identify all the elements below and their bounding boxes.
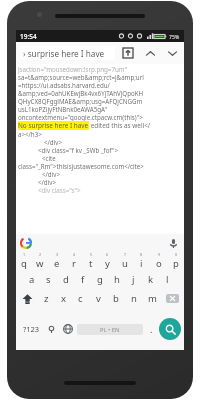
staticText: o [156,257,162,270]
button[interactable]: x [55,288,72,308]
staticText: <div class="s"> [38,186,81,194]
button[interactable]: l [159,270,176,288]
button[interactable]: h [108,270,125,288]
staticText: . [150,323,153,335]
staticText: jsaction="mousedown:lsrp.png=7um" [18,65,128,73]
button[interactable]: › surprise here I have [20,46,115,60]
staticText: 3 [56,252,59,257]
staticText: ?123 [23,324,40,334]
button[interactable]: Emoji [43,308,59,350]
button[interactable]: k [142,270,159,288]
button[interactable]: Previous [142,45,158,61]
staticText: n [131,292,137,305]
staticText: h [114,273,120,286]
staticText: usL1koPZijyFtNBnk0eAWA5gA" [18,105,108,113]
button[interactable]: 7 [116,252,133,270]
button[interactable]: Next [164,45,180,61]
staticText: </div> [38,178,56,186]
staticText: &amp;ved=0ahUKEwjBk4vx6YjTAhVjQpoKH [18,89,144,97]
button[interactable]: Backspace [161,288,184,308]
staticText: f [81,273,85,286]
staticText: </div> [42,170,60,178]
button[interactable]: g [91,270,108,288]
staticText: 9 [158,252,161,257]
staticText: g [97,273,103,286]
button[interactable]: s [40,270,57,288]
button[interactable]: 3 [48,252,65,270]
button[interactable]: 2 [32,252,48,270]
staticText: oncontextmenu="google.ctpacw.cm(this)"> [18,113,143,121]
staticText: a></h3> [18,130,42,138]
staticText: 75% [169,33,180,40]
staticText: r [72,257,76,270]
staticText: 0 [175,252,178,257]
staticText: QHyCX8QFgglMAE&amp;usg=AFQjCNGGm [18,97,143,105]
staticText: </div> [44,138,62,146]
staticText: 19:54 [20,32,37,41]
staticText: <div class="f kv _SWb _fof"> [38,146,119,154]
button[interactable]: 4 [65,252,82,270]
staticText: d [63,273,69,286]
staticText: i [140,257,143,270]
staticText: b [113,292,119,305]
staticText: e [54,257,60,270]
button[interactable]: j [125,270,142,288]
staticText: 6 [106,252,109,257]
staticText: 4 [73,252,76,257]
staticText: 1 [23,252,26,257]
staticText: 2 [39,252,42,257]
button[interactable]: Change language [59,308,77,350]
button[interactable]: 1 [16,252,32,270]
staticText: t [89,257,93,270]
button[interactable]: f [74,270,91,288]
staticText: j [132,273,135,286]
staticText: w [36,257,44,270]
button[interactable]: n [125,288,143,308]
button[interactable]: Search [159,318,181,340]
staticText: class="_Rm">thisisjustawesome.com</cite> [18,162,144,170]
button[interactable]: z [38,288,55,308]
staticText: 7 [124,252,127,257]
staticText: s [46,273,51,286]
button[interactable]: ?123 [19,308,43,350]
staticText: a [29,273,35,286]
staticText: p [173,257,179,270]
button[interactable]: PL • EN [77,324,143,335]
staticText: edited this as well</ [89,121,151,130]
button[interactable]: c [72,288,89,308]
button[interactable]: 6 [99,252,116,270]
staticText: sa=t&amp;source=web&amp;rct=j&amp;url [18,73,144,81]
button[interactable]: Share [120,45,136,61]
staticText: 5 [90,252,93,257]
staticText: k [148,273,154,286]
staticText: u [122,257,128,270]
button[interactable]: b [107,288,125,308]
staticText: c [78,292,83,305]
button[interactable]: 0 [167,252,184,270]
button[interactable]: v [89,288,107,308]
staticText: m [148,292,157,305]
staticText: z [44,292,49,305]
staticText: <cite [42,154,56,162]
button[interactable]: . [143,308,159,350]
button[interactable]: Google [20,237,32,249]
staticText: =https://ui.adsabs.harvard.edu/ [18,81,110,89]
staticText: 8 [140,252,143,257]
staticText: l [166,273,169,286]
button[interactable]: 8 [133,252,150,270]
staticText: No surprise here I have [18,121,89,130]
button[interactable]: a [24,270,40,288]
button[interactable]: m [143,288,161,308]
staticText: PL • EN [100,326,120,334]
staticText: y [105,257,110,270]
button[interactable]: 5 [82,252,99,270]
button[interactable]: Shift [16,288,38,308]
button[interactable]: d [57,270,74,288]
staticText: v [96,292,101,305]
staticText: x [61,292,67,305]
staticText: q [21,257,27,270]
button[interactable]: 9 [150,252,167,270]
staticText: › surprise here I have [23,48,105,59]
button[interactable]: Voice input [166,236,180,250]
